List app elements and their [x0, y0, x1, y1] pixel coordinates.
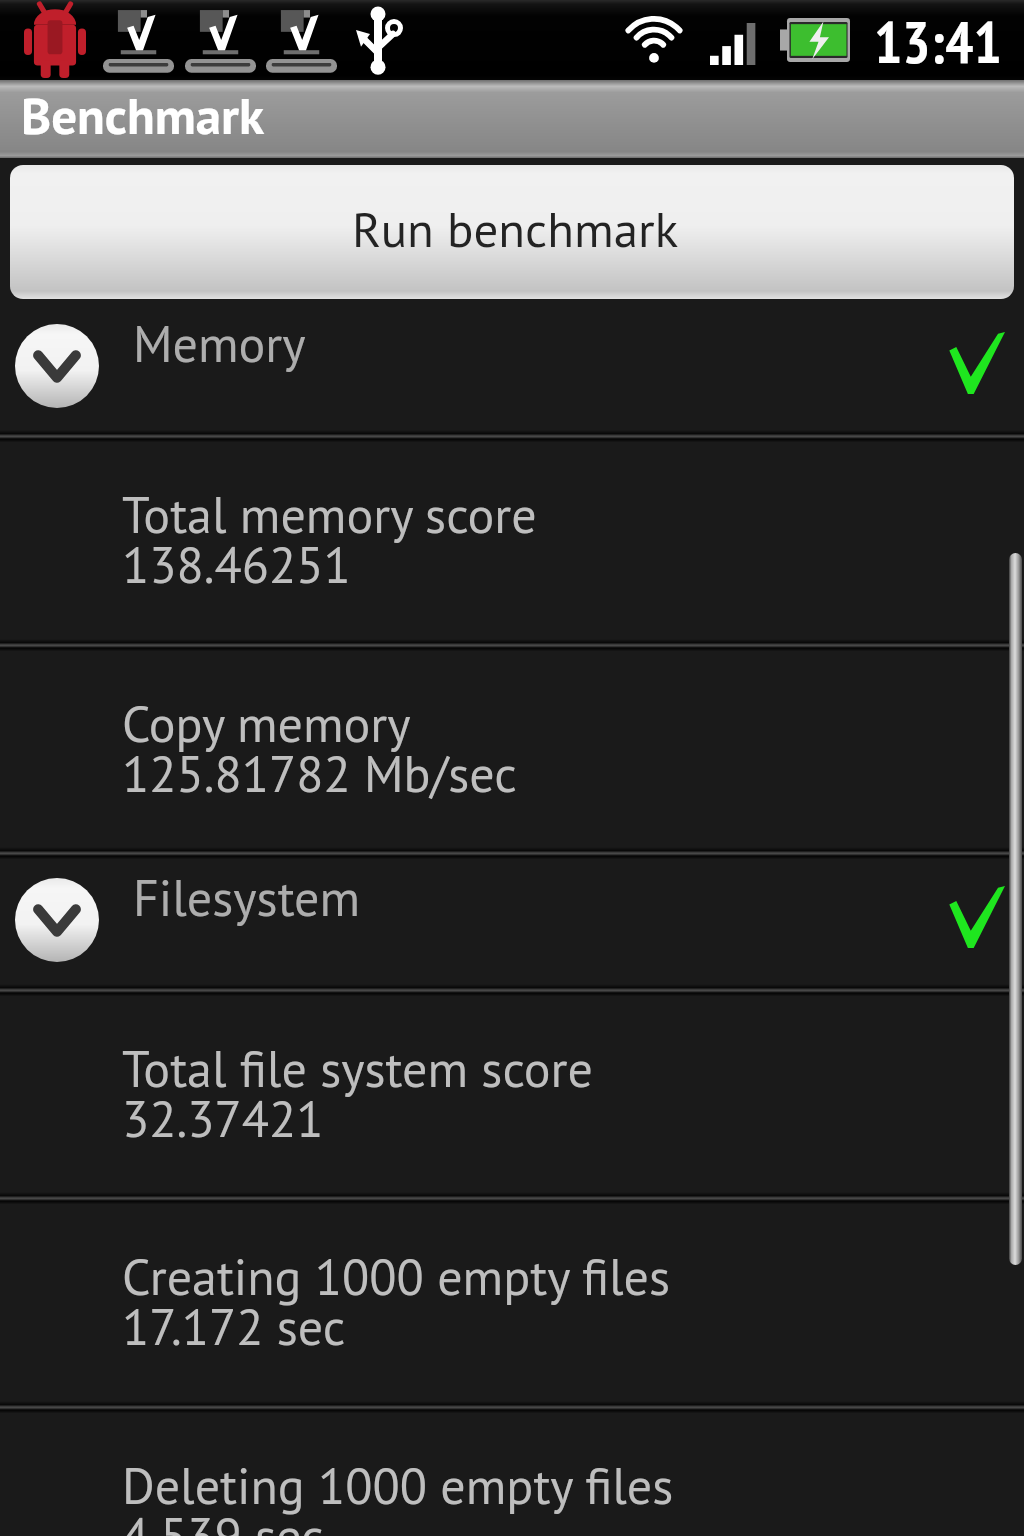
staticText: 17.172 sec: [122, 1294, 346, 1359]
button[interactable]: Creating 1000 empty files: [0, 1204, 1024, 1401]
staticText: Deleting 1000 empty files: [122, 1453, 674, 1518]
staticText: 13:41: [874, 3, 1002, 79]
staticText: Copy memory: [122, 691, 411, 756]
staticText: Memory: [133, 311, 306, 376]
staticText: Run benchmark: [352, 197, 679, 260]
other: Completed: [947, 332, 1005, 394]
staticText: 4.539 sec: [122, 1503, 324, 1536]
staticText: Total file system score: [122, 1036, 593, 1101]
staticText: 125.81782 Mb/sec: [122, 741, 517, 806]
button[interactable]: Filesystem: [0, 859, 1024, 984]
staticText: 32.37421: [122, 1086, 324, 1151]
button[interactable]: Copy memory: [0, 651, 1024, 847]
staticText: Creating 1000 empty files: [122, 1244, 671, 1309]
button[interactable]: Run benchmark: [10, 165, 1014, 299]
button[interactable]: Total file system score: [0, 996, 1024, 1192]
staticText: 138.46251: [122, 532, 351, 597]
staticText: Filesystem: [133, 865, 361, 930]
staticText: Total memory score: [122, 482, 537, 547]
button[interactable]: Memory: [0, 299, 1024, 430]
staticText: Benchmark: [21, 82, 265, 148]
button[interactable]: Total memory score: [0, 442, 1024, 639]
other: Completed: [947, 886, 1005, 948]
button[interactable]: Deleting 1000 empty files: [0, 1413, 1024, 1536]
